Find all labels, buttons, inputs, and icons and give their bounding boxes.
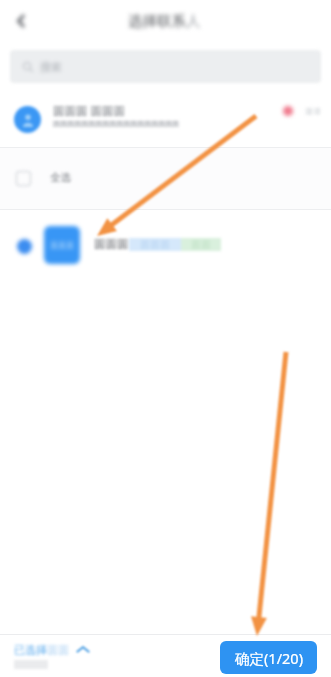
staticText: 圆圆圆 圆圆圆 bbox=[53, 103, 125, 119]
staticText: 已选择 bbox=[14, 643, 47, 657]
button[interactable] bbox=[0, 210, 331, 272]
staticText: 圆圆圆 bbox=[140, 238, 170, 251]
staticText: 确定(1/20) bbox=[235, 648, 303, 668]
staticText: 圆圆 bbox=[191, 238, 211, 251]
staticText: 某某某 bbox=[50, 240, 74, 250]
staticText: 人 bbox=[186, 12, 201, 30]
staticText: 邀请 bbox=[305, 106, 321, 116]
staticText: 圆圆圆圆圆圆圆圆圆圆圆圆圆圆圆圆圆圆 bbox=[53, 119, 179, 128]
button[interactable]: Back bbox=[7, 7, 35, 35]
staticText: 选择联系 bbox=[128, 12, 186, 30]
button[interactable]: 确定(1/20) bbox=[220, 641, 317, 674]
staticText: 圆圆圆 bbox=[94, 237, 129, 251]
staticText: 圆圆 bbox=[47, 643, 69, 657]
staticText: 搜索 bbox=[40, 60, 62, 74]
button[interactable] bbox=[0, 93, 331, 147]
button[interactable]: 搜索 bbox=[10, 50, 321, 83]
button[interactable]: 已选择 bbox=[14, 643, 90, 657]
staticText: 全选 bbox=[50, 171, 71, 184]
button[interactable] bbox=[0, 148, 331, 209]
